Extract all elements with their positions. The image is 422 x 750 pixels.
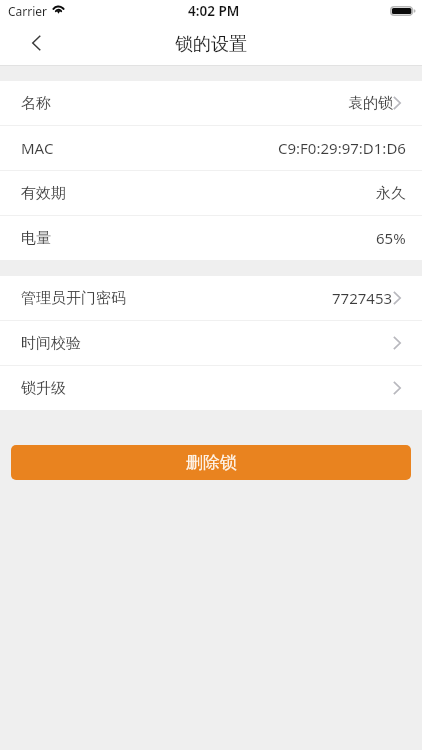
staticText: 名称 — [21, 94, 51, 113]
button[interactable]: 时间校验 — [0, 321, 422, 366]
staticText: 锁升级 — [21, 379, 66, 398]
button[interactable]: 名称 — [0, 81, 422, 126]
button[interactable]: 电量 — [0, 216, 422, 260]
button[interactable]: MAC — [0, 126, 422, 171]
staticText: 永久 — [376, 184, 406, 203]
staticText: C9:F0:29:97:D1:D6 — [278, 138, 406, 158]
staticText: 删除锁 — [186, 452, 237, 473]
staticText: 管理员开门密码 — [21, 289, 126, 308]
staticText: 锁的设置 — [175, 33, 247, 56]
staticText: 7727453 — [332, 288, 393, 308]
staticText: 65% — [376, 228, 406, 248]
button[interactable]: 删除锁 — [11, 445, 411, 480]
button[interactable]: 锁升级 — [0, 366, 422, 410]
staticText: 电量 — [21, 229, 51, 248]
button[interactable]: Back — [0, 24, 56, 65]
staticText: 4:02 PM — [188, 2, 240, 20]
button[interactable]: 管理员开门密码 — [0, 276, 422, 321]
staticText: 有效期 — [21, 184, 66, 203]
staticText: MAC — [21, 138, 54, 158]
staticText: 时间校验 — [21, 334, 81, 353]
staticText: 袁的锁 — [348, 94, 393, 113]
staticText: Carrier — [8, 3, 48, 19]
button[interactable]: 有效期 — [0, 171, 422, 216]
